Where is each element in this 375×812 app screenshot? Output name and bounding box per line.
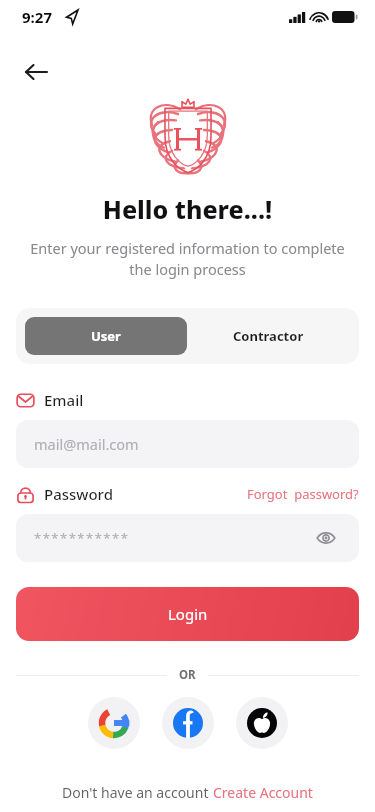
button[interactable]: Show password bbox=[311, 523, 341, 553]
staticText: Login bbox=[168, 604, 208, 624]
staticText: Email bbox=[44, 390, 84, 410]
staticText: Hello there...! bbox=[0, 192, 375, 226]
button[interactable]: Sign in with Apple bbox=[236, 697, 288, 749]
staticText: Don't have an account bbox=[62, 783, 213, 802]
button[interactable]: mail@mail.com bbox=[16, 420, 359, 468]
button[interactable]: Contractor bbox=[187, 317, 350, 355]
staticText: 9:27 bbox=[22, 7, 52, 27]
button[interactable]: Create Account bbox=[213, 783, 313, 802]
staticText: Password bbox=[44, 484, 113, 504]
button[interactable]: Back bbox=[14, 50, 58, 94]
button[interactable]: *********** bbox=[16, 514, 359, 562]
staticText: mail@mail.com bbox=[34, 434, 139, 454]
button[interactable]: Login bbox=[16, 587, 359, 641]
staticText: *********** bbox=[34, 529, 130, 547]
staticText: OR bbox=[179, 667, 196, 683]
button[interactable]: Forgot password? bbox=[247, 485, 359, 503]
button[interactable]: Sign in with Facebook bbox=[162, 697, 214, 749]
staticText: Forgot password? bbox=[247, 485, 359, 503]
button[interactable]: User bbox=[25, 317, 187, 355]
button[interactable]: Sign in with Google bbox=[88, 697, 140, 749]
staticText: User bbox=[91, 327, 121, 345]
staticText: Contractor bbox=[233, 327, 304, 345]
staticText: Create Account bbox=[213, 783, 313, 802]
staticText: Enter your registered information to com… bbox=[20, 238, 355, 280]
